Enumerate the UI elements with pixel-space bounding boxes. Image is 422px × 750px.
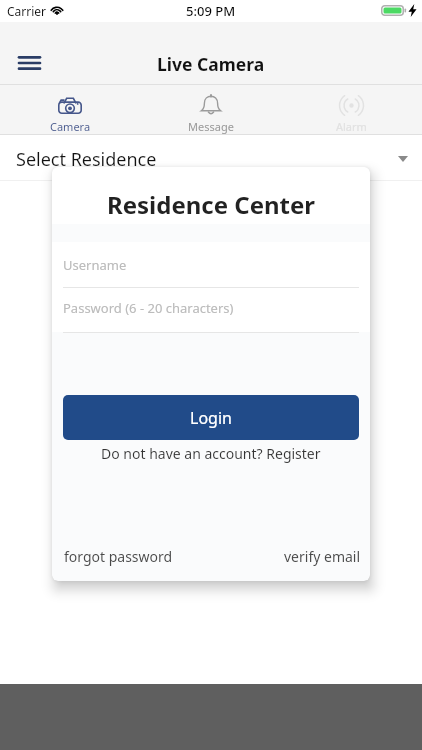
- button[interactable]: Select Residence: [0, 135, 422, 180]
- staticText: Do not have an account? Register: [101, 444, 321, 463]
- staticText: Password (6 - 20 characters): [63, 299, 234, 317]
- button[interactable]: verify email: [284, 547, 361, 566]
- button[interactable]: forgot password: [64, 547, 173, 566]
- staticText: Alarm: [336, 119, 367, 134]
- button[interactable]: Password (6 - 20 characters): [52, 288, 370, 332]
- button[interactable]: Alarm: [281, 85, 422, 135]
- button[interactable]: Message: [140, 85, 281, 135]
- staticText: Residence Center: [52, 188, 370, 221]
- staticText: Live Camera: [157, 52, 265, 76]
- staticText: verify email: [284, 547, 361, 566]
- button[interactable]: Do not have an account? Register: [52, 444, 370, 463]
- staticText: forgot password: [64, 547, 173, 566]
- button[interactable]: Menu: [7, 43, 51, 83]
- button[interactable]: Camera: [0, 85, 140, 135]
- staticText: Select Residence: [16, 147, 157, 172]
- staticText: Username: [63, 256, 127, 274]
- staticText: Carrier: [7, 3, 47, 19]
- button[interactable]: Login: [63, 395, 359, 440]
- staticText: Login: [190, 407, 232, 429]
- button[interactable]: Username: [52, 242, 370, 287]
- staticText: Camera: [50, 119, 91, 134]
- staticText: Message: [188, 119, 234, 134]
- staticText: 5:09 PM: [186, 2, 236, 20]
